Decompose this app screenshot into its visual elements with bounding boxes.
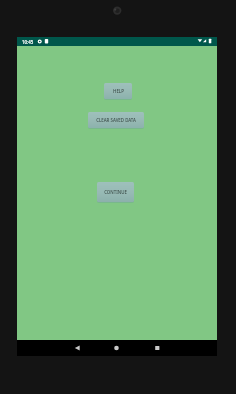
staticText: HELP — [113, 88, 124, 94]
button[interactable]: Recent apps — [144, 340, 170, 356]
button[interactable]: Back — [64, 340, 90, 356]
button[interactable]: CONTINUE — [97, 182, 134, 202]
button[interactable]: HELP — [104, 83, 132, 99]
staticText: CONTINUE — [104, 189, 127, 195]
button[interactable]: CLEAR SAVED DATA — [88, 112, 144, 128]
staticText: CLEAR SAVED DATA — [96, 117, 136, 123]
staticText: 10:45 — [22, 39, 34, 45]
button[interactable]: Home — [104, 340, 130, 356]
